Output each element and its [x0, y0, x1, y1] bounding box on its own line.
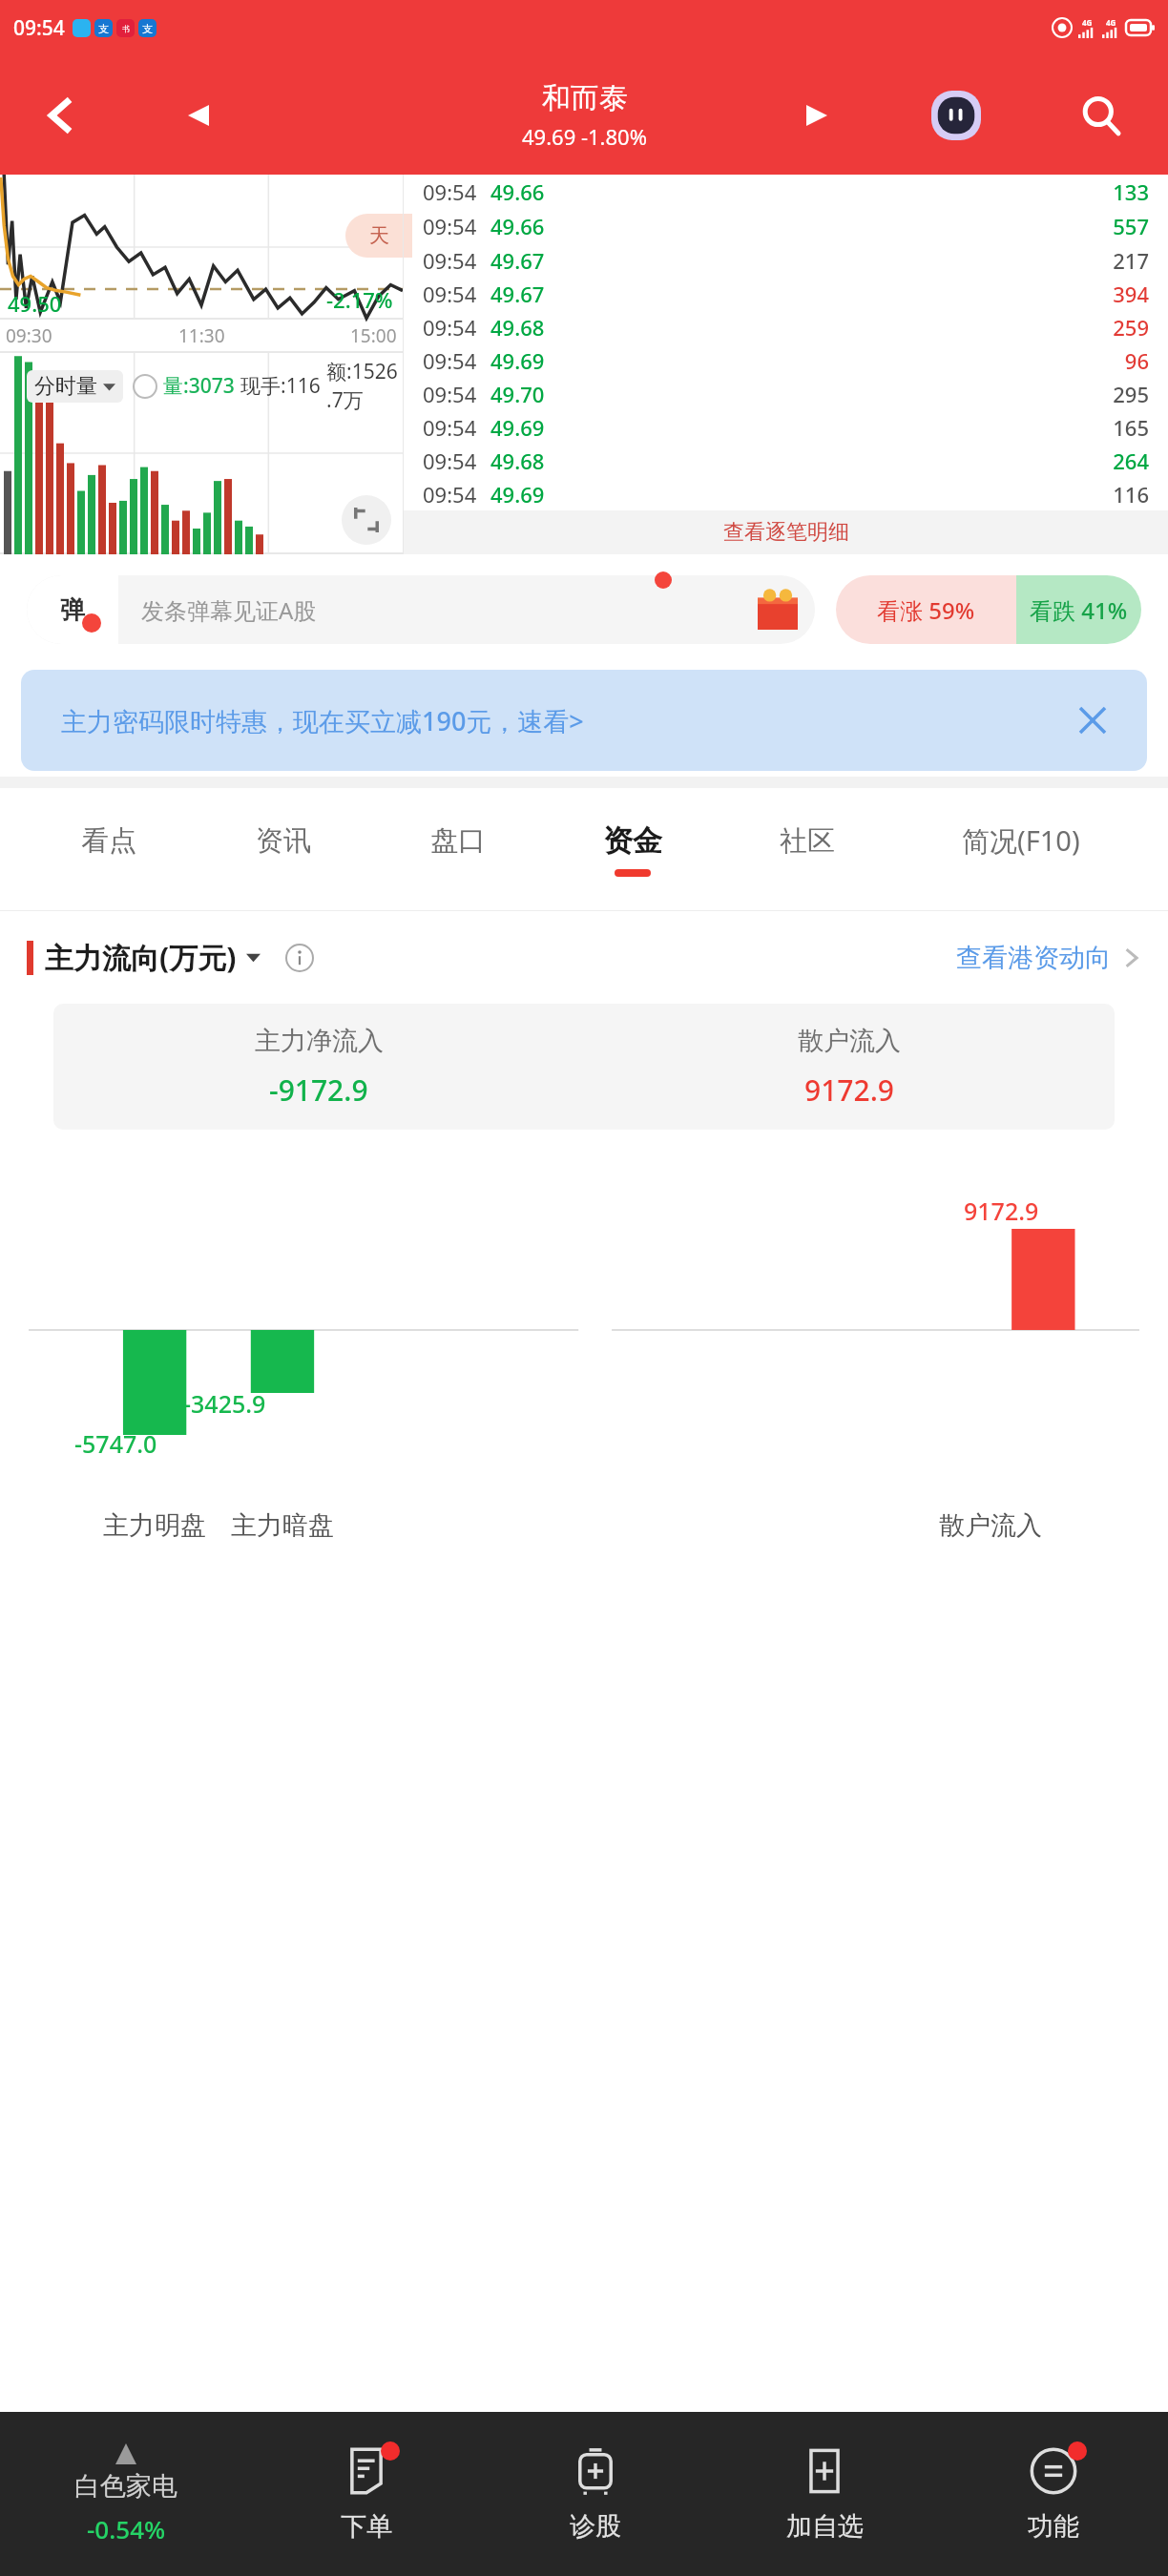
button[interactable]: 弹	[27, 575, 815, 644]
staticText: 主力暗盘	[231, 1509, 334, 1542]
button[interactable]: 09:54	[404, 377, 1168, 410]
staticText: 11:30	[178, 323, 225, 348]
staticText: 49.50	[8, 289, 62, 318]
staticText: 加自选	[786, 2510, 864, 2543]
staticText: 查看港资动向	[956, 942, 1111, 974]
staticText: 白色家电	[74, 2470, 177, 2503]
staticText: 09:54	[423, 346, 477, 375]
staticText: 116	[545, 480, 1149, 509]
button[interactable]: Search	[1071, 85, 1132, 146]
staticText: 09:54	[423, 246, 477, 275]
button[interactable]: 分时量	[27, 370, 123, 403]
staticText: 49.70	[490, 380, 545, 408]
staticText: 49.69 -1.80%	[522, 122, 647, 151]
staticText: 09:54	[423, 177, 477, 206]
staticText: 下单	[341, 2510, 392, 2543]
staticText: 09:54	[423, 380, 477, 408]
staticText: 09:30	[6, 323, 52, 348]
button[interactable]: 查看逐笔明细	[404, 510, 1168, 554]
staticText: 和而泰	[542, 80, 628, 116]
staticText: 49.68	[490, 313, 545, 342]
staticText: 49.66	[490, 212, 545, 240]
button[interactable]: 简况(F10)	[894, 788, 1147, 910]
button[interactable]: 加自选	[710, 2412, 939, 2576]
staticText: 额:1526.7万	[326, 358, 403, 414]
button[interactable]: 盘口	[370, 788, 545, 910]
button[interactable]: 主力净流入	[53, 1004, 584, 1130]
staticText: 查看逐笔明细	[723, 519, 849, 546]
button[interactable]: Next stock	[790, 89, 844, 142]
button[interactable]: 09:54	[404, 343, 1168, 377]
staticText: 主力密码限时特惠，现在买立减190元，速看>	[61, 703, 584, 738]
staticText: 49.69	[490, 346, 545, 375]
button[interactable]: 散户流入	[584, 1004, 1115, 1130]
staticText: -0.54%	[87, 2512, 166, 2545]
button[interactable]: Close ad	[1069, 696, 1116, 744]
button[interactable]: Info	[282, 940, 318, 976]
button[interactable]: 社区	[720, 788, 894, 910]
button[interactable]: Previous stock	[172, 89, 225, 142]
staticText: 49.69	[490, 480, 545, 509]
staticText: 96	[545, 346, 1149, 375]
staticText: 天	[369, 223, 389, 248]
button[interactable]: 主力流向(万元)	[45, 938, 261, 977]
button[interactable]: 09:54	[404, 477, 1168, 510]
staticText: 09:54	[13, 14, 65, 42]
staticText: 支	[142, 22, 153, 35]
button[interactable]: 看跌 41%	[1016, 575, 1141, 644]
button[interactable]: 功能	[939, 2412, 1168, 2576]
staticText: 分时量	[34, 373, 97, 400]
staticText: 557	[545, 212, 1149, 240]
button[interactable]: 诊股	[481, 2412, 710, 2576]
button[interactable]: AI assistant	[926, 85, 987, 146]
button[interactable]: 主力密码限时特惠，现在买立减190元，速看>	[21, 670, 1147, 771]
staticText: 主力流向(万元)	[45, 938, 237, 977]
staticText: 09:54	[423, 280, 477, 308]
staticText: 4G	[1082, 17, 1093, 28]
button[interactable]: 看点	[21, 788, 196, 910]
button[interactable]: Back	[32, 88, 88, 143]
staticText: 看涨 59%	[877, 594, 975, 626]
button[interactable]: 查看港资动向	[956, 942, 1141, 974]
button[interactable]: 白色家电	[0, 2412, 252, 2576]
button[interactable]: 看涨 59%	[836, 575, 1016, 644]
button[interactable]: 下单	[252, 2412, 481, 2576]
button[interactable]: Fullscreen chart	[342, 495, 391, 545]
staticText: 书	[122, 24, 130, 33]
button[interactable]: 09:54	[404, 243, 1168, 277]
staticText: 支	[98, 22, 109, 35]
button[interactable]: 资讯	[196, 788, 370, 910]
button[interactable]: 09:54	[404, 310, 1168, 343]
staticText: 主力明盘	[103, 1509, 206, 1542]
staticText: -2.17%	[326, 285, 393, 314]
button[interactable]: 09:54	[404, 277, 1168, 310]
staticText: 264	[545, 447, 1149, 475]
staticText: -9172.9	[269, 1070, 368, 1110]
staticText: 资金	[603, 822, 662, 860]
staticText: 49.69	[490, 413, 545, 442]
staticText: 现手:116	[240, 372, 321, 400]
staticText: 49.66	[490, 177, 545, 206]
staticText: 主力净流入	[255, 1025, 384, 1057]
staticText: 259	[545, 313, 1149, 342]
staticText: 社区	[780, 823, 835, 859]
staticText: 09:54	[423, 313, 477, 342]
staticText: 15:00	[350, 323, 397, 348]
button[interactable]: 09:54	[404, 410, 1168, 444]
staticText: 发条弹幕见证A股	[141, 594, 317, 626]
staticText: 165	[545, 413, 1149, 442]
staticText: 看跌 41%	[1030, 594, 1128, 626]
button[interactable]: 09:54	[404, 175, 1168, 209]
staticText: 9172.9	[804, 1070, 894, 1110]
staticText: 散户流入	[798, 1025, 901, 1057]
staticText: 49.67	[490, 246, 545, 275]
staticText: 09:54	[423, 212, 477, 240]
staticText: 09:54	[423, 447, 477, 475]
button[interactable]: 资金	[545, 788, 720, 910]
staticText: 133	[545, 177, 1149, 206]
button[interactable]: 09:54	[404, 209, 1168, 243]
staticText: 诊股	[570, 2510, 621, 2543]
staticText: 394	[545, 280, 1149, 308]
staticText: 295	[545, 380, 1149, 408]
button[interactable]: 09:54	[404, 444, 1168, 477]
